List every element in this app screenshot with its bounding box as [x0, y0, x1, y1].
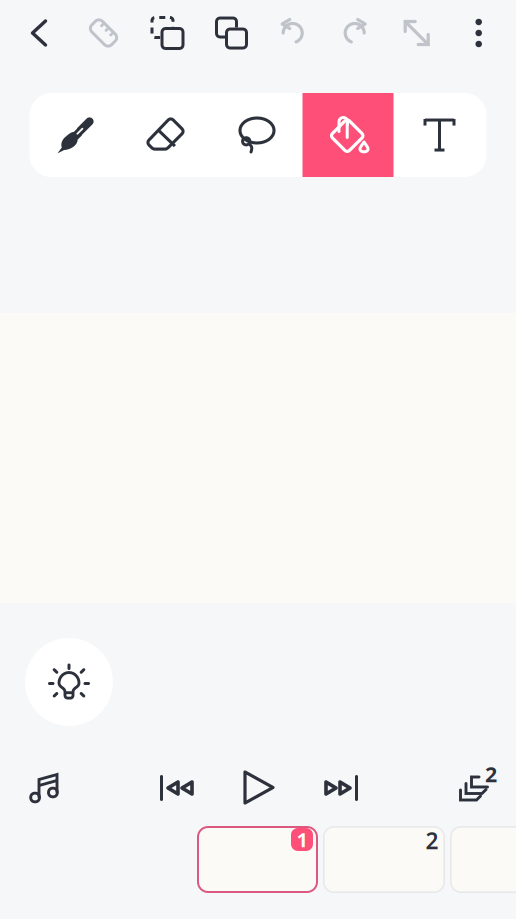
- button[interactable]: Text: [393, 93, 486, 177]
- button[interactable]: Eraser: [120, 93, 211, 177]
- button[interactable]: Play: [227, 760, 291, 816]
- button[interactable]: Frame 2: [323, 826, 445, 893]
- button[interactable]: More options: [448, 0, 510, 66]
- button[interactable]: Undo: [262, 0, 324, 66]
- button[interactable]: Duplicate: [199, 0, 263, 66]
- button[interactable]: Select: [135, 0, 199, 66]
- button[interactable]: Previous frame: [145, 760, 209, 816]
- button[interactable]: Frame 1: [197, 826, 318, 893]
- button[interactable]: Layers: [439, 760, 509, 816]
- button[interactable]: Fill: [302, 93, 393, 177]
- button[interactable]: Redo: [324, 0, 386, 66]
- button[interactable]: Lasso: [211, 93, 302, 177]
- staticText: 1: [296, 826, 307, 853]
- button[interactable]: Next frame: [309, 760, 373, 816]
- button[interactable]: Ruler: [71, 0, 135, 66]
- button[interactable]: Fullscreen: [386, 0, 448, 66]
- button[interactable]: Frame 3: [450, 826, 516, 893]
- staticText: 2: [425, 825, 438, 855]
- button[interactable]: Audio: [13, 760, 79, 816]
- staticText: 2: [485, 760, 497, 788]
- button[interactable]: Brush: [29, 93, 120, 177]
- button[interactable]: Back: [7, 0, 71, 66]
- button[interactable]: Onion skin: [25, 638, 113, 726]
